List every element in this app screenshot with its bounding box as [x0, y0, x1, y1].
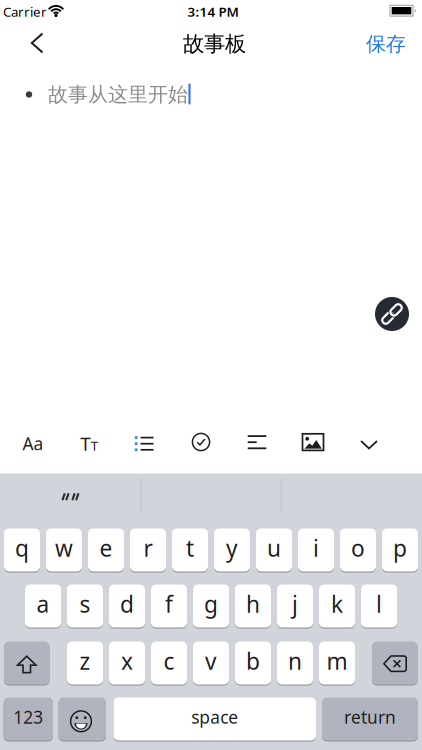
button[interactable]: t	[172, 528, 208, 572]
button[interactable]: Bulleted list	[123, 423, 167, 463]
button[interactable]: Delete	[372, 641, 417, 685]
staticText: j	[292, 589, 298, 619]
staticText: p	[393, 533, 407, 563]
staticText: Aa	[22, 432, 43, 455]
button[interactable]: Dismiss keyboard	[347, 423, 391, 463]
button[interactable]: Checklist	[179, 423, 223, 463]
staticText: x	[121, 646, 133, 676]
button[interactable]: Emoji	[58, 697, 106, 741]
button[interactable]: x	[109, 641, 145, 685]
staticText: i	[313, 533, 319, 563]
button[interactable]: c	[151, 641, 187, 685]
staticText: r	[143, 533, 152, 563]
button[interactable]: f	[151, 584, 187, 628]
staticText: 保存	[366, 32, 406, 56]
button[interactable]: k	[319, 584, 355, 628]
staticText: e	[99, 533, 112, 563]
staticText: a	[36, 589, 49, 619]
staticText: y	[226, 533, 238, 563]
staticText: space	[191, 705, 238, 728]
button[interactable]: o	[340, 528, 376, 572]
staticText: 故事从这里开始	[48, 82, 188, 107]
button[interactable]: b	[235, 641, 271, 685]
button[interactable]: y	[214, 528, 250, 572]
staticText: d	[120, 589, 134, 619]
staticText: z	[79, 646, 90, 676]
button[interactable]: return	[322, 697, 418, 741]
staticText: w	[55, 533, 73, 563]
staticText: 故事板	[183, 31, 246, 57]
button[interactable]: Shift	[4, 641, 49, 685]
button[interactable]: e	[88, 528, 124, 572]
staticText: l	[376, 589, 382, 619]
staticText: k	[331, 589, 343, 619]
staticText: 123	[13, 705, 43, 728]
button[interactable]: s	[67, 584, 103, 628]
button[interactable]: z	[67, 641, 103, 685]
button[interactable]: Insert link	[375, 297, 409, 331]
button[interactable]: Paragraph alignment	[235, 423, 279, 463]
button[interactable]: space	[113, 697, 316, 741]
staticText: f	[165, 589, 173, 619]
button[interactable]: Insert image	[291, 423, 335, 463]
button[interactable]: p	[382, 528, 418, 572]
staticText: t	[186, 533, 194, 563]
staticText: g	[204, 589, 218, 619]
button[interactable]: Back	[15, 21, 59, 65]
button[interactable]: d	[109, 584, 145, 628]
staticText: u	[267, 533, 281, 563]
button[interactable]: n	[277, 641, 313, 685]
button[interactable]: Text formatting	[11, 423, 55, 463]
button[interactable]: 123	[3, 697, 53, 741]
staticText: T	[91, 437, 98, 454]
button[interactable]: 保存	[354, 22, 418, 66]
staticText: s	[79, 589, 90, 619]
button[interactable]: w	[46, 528, 82, 572]
staticText: n	[288, 646, 302, 676]
button[interactable]: Text size	[67, 423, 111, 463]
button[interactable]: m	[319, 641, 355, 685]
button[interactable]: v	[193, 641, 229, 685]
button[interactable]: a	[25, 584, 61, 628]
button[interactable]: l	[361, 584, 397, 628]
staticText: v	[205, 646, 217, 676]
staticText: Carrier	[3, 3, 47, 20]
staticText: 3:14 PM	[187, 3, 238, 20]
staticText: c	[163, 646, 174, 676]
button[interactable]: i	[298, 528, 334, 572]
staticText: o	[351, 533, 365, 563]
button[interactable]: u	[256, 528, 292, 572]
button[interactable]: h	[235, 584, 271, 628]
staticText: q	[15, 533, 29, 563]
button[interactable]: r	[130, 528, 166, 572]
button[interactable]: j	[277, 584, 313, 628]
staticText: m	[326, 646, 347, 676]
button[interactable]: g	[193, 584, 229, 628]
staticText: T	[80, 431, 90, 456]
staticText: return	[344, 705, 396, 728]
staticText: b	[246, 646, 260, 676]
staticText: h	[246, 589, 260, 619]
button[interactable]: q	[4, 528, 40, 572]
